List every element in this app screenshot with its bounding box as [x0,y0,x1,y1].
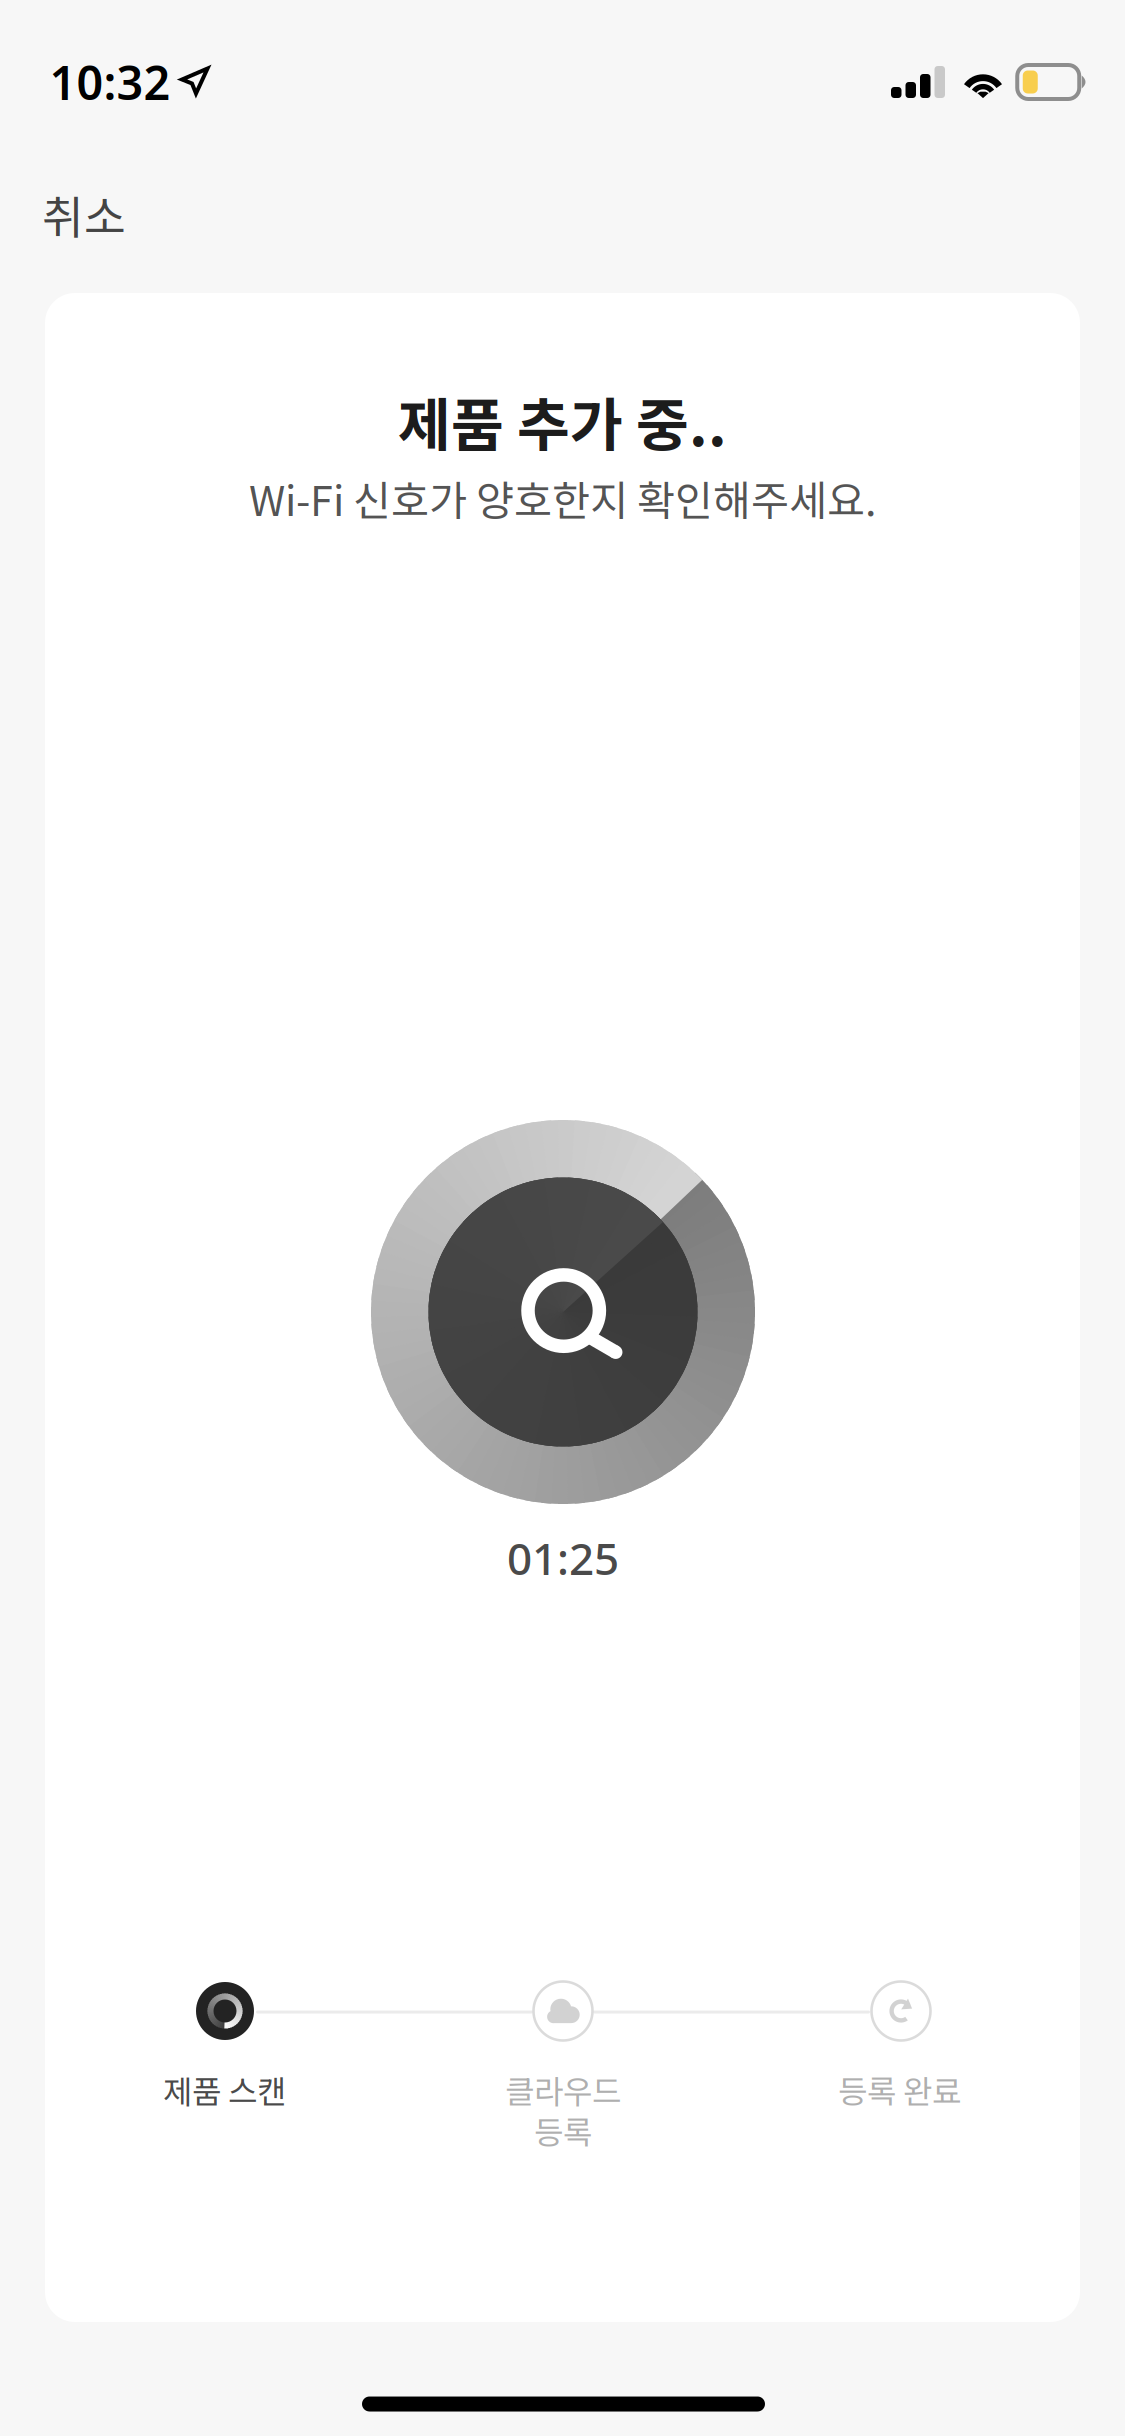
staticText: 클라우드 [505,2066,621,2113]
staticText: 등록 완료 [838,2066,961,2113]
staticText: 등록 [534,2107,592,2154]
button[interactable]: 취소 [19,168,149,260]
staticText: 10:32 [49,50,170,114]
staticText: 01:25 [507,1528,619,1588]
staticText: 취소 [42,181,126,247]
staticText: Wi-Fi 신호가 양호한지 확인해주세요. [249,468,876,528]
staticText: 제품 추가 중.. [398,379,727,462]
staticText: 제품 스캔 [163,2066,286,2113]
